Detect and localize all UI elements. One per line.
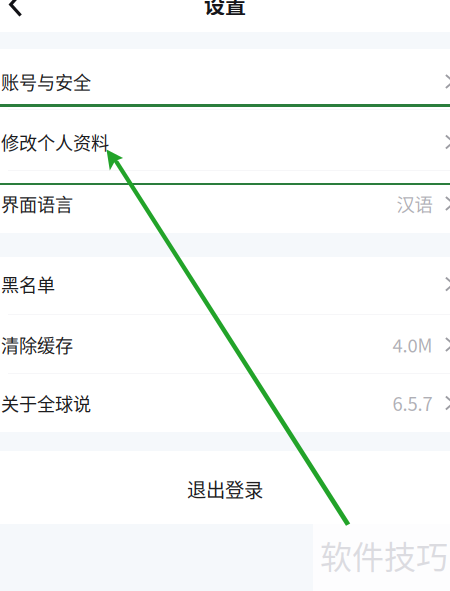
staticText: 修改个人资料: [1, 129, 109, 155]
button[interactable]: 界面语言: [0, 171, 450, 233]
button[interactable]: 黑名单: [0, 257, 450, 315]
button[interactable]: 关于全球说: [0, 374, 450, 432]
staticText: 6.5.7: [392, 390, 432, 416]
staticText: 汉语: [396, 190, 432, 217]
staticText: 黑名单: [1, 271, 55, 297]
button[interactable]: Back: [0, 0, 22, 22]
staticText: 账号与安全: [1, 68, 91, 95]
button[interactable]: 账号与安全: [0, 49, 450, 110]
button[interactable]: 清除缓存: [0, 315, 450, 374]
staticText: 4.0M: [392, 331, 432, 358]
staticText: 设置: [204, 0, 246, 19]
staticText: 清除缓存: [1, 331, 73, 358]
staticText: 关于全球说: [1, 390, 91, 416]
staticText: 退出登录: [187, 475, 263, 503]
staticText: 软件技巧: [320, 532, 448, 578]
button[interactable]: 退出登录: [0, 451, 450, 524]
button[interactable]: 修改个人资料: [0, 110, 450, 171]
staticText: 界面语言: [1, 190, 73, 217]
